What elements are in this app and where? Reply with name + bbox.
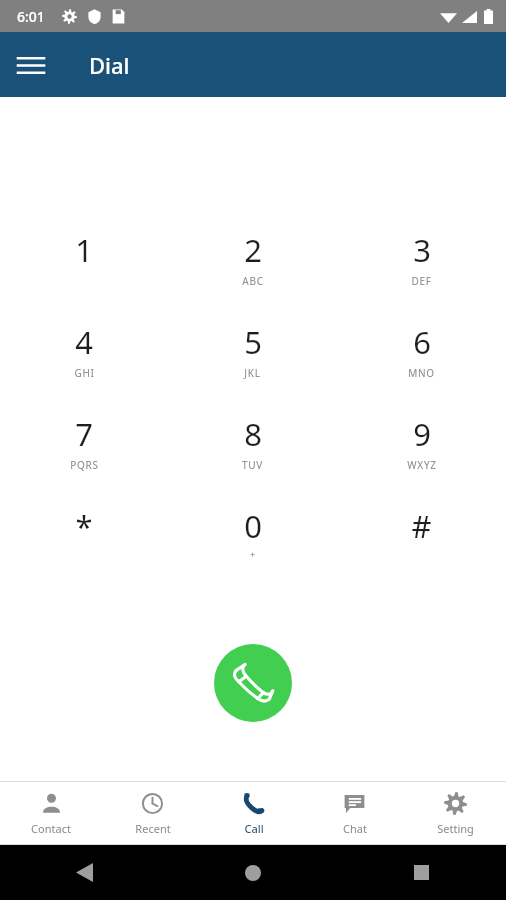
staticText: Setting <box>437 821 474 836</box>
button[interactable]: 8 <box>168 401 337 493</box>
button[interactable]: Call <box>203 782 304 844</box>
staticText: 3 <box>413 229 431 271</box>
button[interactable]: 1 <box>0 217 168 309</box>
button[interactable]: 2 <box>168 217 337 309</box>
button[interactable]: * <box>0 493 168 585</box>
staticText: 8 <box>244 413 262 455</box>
staticText: 1 <box>75 229 93 271</box>
staticText: 6:01 <box>17 7 45 26</box>
staticText: Chat <box>343 821 367 836</box>
staticText: Recent <box>135 821 171 836</box>
button[interactable]: Open navigation menu <box>8 42 54 88</box>
button[interactable]: 4 <box>0 309 168 401</box>
button[interactable]: Contact <box>0 782 102 844</box>
button[interactable]: Setting <box>405 782 506 844</box>
staticText: 2 <box>244 229 262 271</box>
button[interactable]: Chat <box>304 782 405 844</box>
staticText: GHI <box>74 366 95 380</box>
staticText: 4 <box>75 321 93 363</box>
staticText: ABC <box>242 274 264 288</box>
button[interactable]: 9 <box>337 401 506 493</box>
staticText: Dial <box>89 50 130 80</box>
button[interactable]: Back <box>0 845 168 900</box>
staticText: 7 <box>75 413 93 455</box>
staticText: * <box>75 505 93 547</box>
staticText: DEF <box>411 274 432 288</box>
button[interactable]: 0 <box>168 493 337 585</box>
staticText: PQRS <box>70 458 99 472</box>
button[interactable]: # <box>337 493 506 585</box>
button[interactable]: Home <box>168 845 337 900</box>
staticText: 9 <box>413 413 431 455</box>
button[interactable]: Recent <box>102 782 203 844</box>
staticText: JKL <box>244 366 261 380</box>
staticText: Call <box>244 821 264 836</box>
button[interactable]: 6 <box>337 309 506 401</box>
button[interactable]: 3 <box>337 217 506 309</box>
staticText: # <box>411 505 432 547</box>
button[interactable]: 7 <box>0 401 168 493</box>
staticText: 5 <box>244 321 262 363</box>
staticText: WXYZ <box>407 458 437 472</box>
staticText: Contact <box>31 821 71 836</box>
button[interactable]: Call <box>214 644 292 722</box>
staticText: 6 <box>413 321 431 363</box>
button[interactable]: 5 <box>168 309 337 401</box>
staticText: TUV <box>242 458 263 472</box>
staticText: 0 <box>244 505 262 547</box>
button[interactable]: Recent apps <box>337 845 506 900</box>
staticText: + <box>250 548 256 560</box>
staticText: MNO <box>408 366 435 380</box>
